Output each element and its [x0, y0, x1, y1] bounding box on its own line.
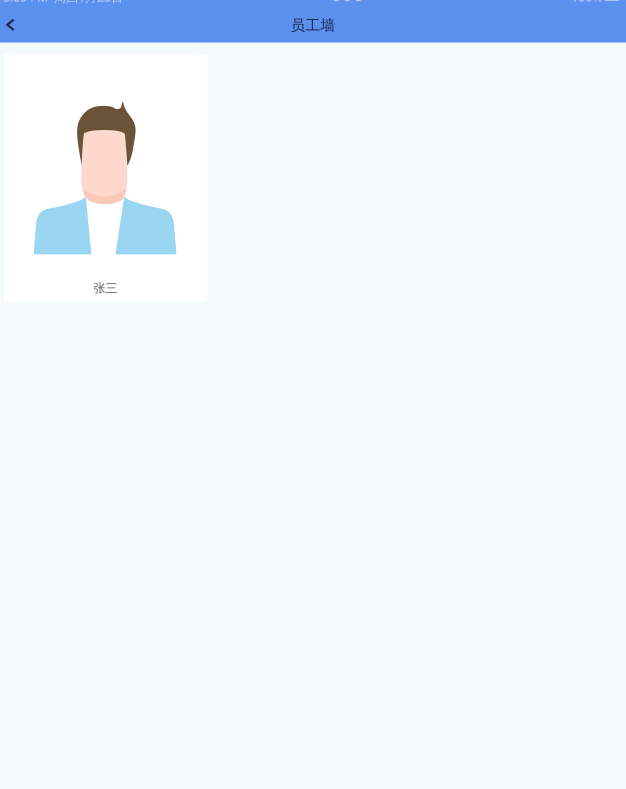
- staticText: 100%: [571, 0, 602, 5]
- staticText: 员工墙: [290, 16, 335, 34]
- button[interactable]: Back: [0, 2, 21, 44]
- staticText: 张三: [93, 281, 117, 295]
- staticText: 3:05 PM 周四1月23日: [3, 0, 123, 5]
- staticText: ● ● ●: [332, 0, 362, 2]
